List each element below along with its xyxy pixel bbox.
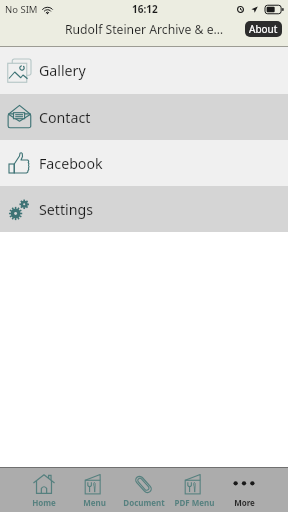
staticText: PDF Menu — [174, 497, 215, 508]
button[interactable]: About — [245, 21, 282, 37]
staticText: Facebook — [39, 154, 103, 173]
staticText: Gallery — [39, 61, 86, 80]
staticText: Rudolf Steiner Archive & e… — [65, 21, 224, 38]
button[interactable]: Document — [119, 468, 169, 512]
staticText: Contact — [39, 108, 91, 127]
staticText: No SIM — [5, 3, 38, 16]
staticText: About — [249, 22, 278, 36]
button[interactable]: Home — [19, 468, 69, 512]
staticText: More — [234, 497, 255, 508]
button[interactable]: Settings — [0, 186, 288, 232]
staticText: Settings — [39, 200, 93, 219]
staticText: Document — [123, 497, 165, 508]
button[interactable]: PDF Menu — [169, 468, 219, 512]
button[interactable]: Contact — [0, 94, 288, 140]
staticText: Home — [32, 497, 56, 508]
button[interactable]: Gallery — [0, 47, 288, 94]
button[interactable]: More — [219, 468, 269, 512]
button[interactable]: Facebook — [0, 140, 288, 186]
staticText: Menu — [83, 497, 106, 508]
button[interactable]: Menu — [69, 468, 119, 512]
staticText: 16:12 — [132, 2, 158, 16]
